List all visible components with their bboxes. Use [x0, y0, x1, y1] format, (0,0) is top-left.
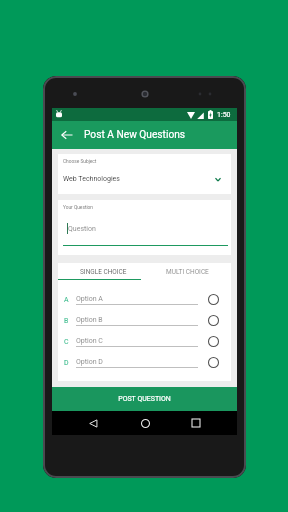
button[interactable]: Back [82, 412, 104, 434]
button[interactable]: A [58, 284, 231, 305]
staticText: 1:50 [217, 111, 231, 119]
button[interactable]: Back [58, 126, 76, 144]
staticText: MULTI CHOICE [166, 268, 209, 276]
staticText: A [64, 296, 69, 304]
staticText: POST QUESTION [118, 395, 171, 403]
button[interactable]: Home [134, 412, 156, 434]
staticText: Web Technologies [63, 175, 120, 183]
staticText: Option B [76, 316, 103, 324]
staticText: Your Question [63, 205, 94, 211]
staticText: Option A [76, 295, 103, 303]
staticText: D [64, 359, 69, 367]
staticText: SINGLE CHOICE [80, 268, 127, 276]
button[interactable]: C [58, 326, 231, 347]
staticText: Choose Subject [63, 159, 97, 165]
button[interactable]: D [58, 347, 231, 368]
button[interactable]: Recent apps [185, 412, 207, 434]
button[interactable]: SINGLE CHOICE [58, 263, 144, 280]
button[interactable]: POST QUESTION [52, 387, 237, 411]
staticText: B [64, 317, 69, 325]
staticText: C [64, 338, 69, 346]
button[interactable]: MULTI CHOICE [144, 263, 231, 280]
staticText: Question [68, 225, 96, 233]
staticText: Option D [76, 358, 103, 366]
button[interactable]: B [58, 305, 231, 326]
staticText: Option C [76, 337, 103, 345]
staticText: Post A New Questions [84, 129, 186, 141]
